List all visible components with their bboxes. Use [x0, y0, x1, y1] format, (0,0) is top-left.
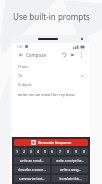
button[interactable]: 4 — [35, 148, 41, 155]
staticText: 4 — [37, 149, 40, 154]
button[interactable]: Subject — [12, 80, 90, 89]
button[interactable]: Send — [69, 51, 76, 58]
button[interactable]: translate this... — [52, 175, 88, 182]
button[interactable]: 0 — [81, 148, 88, 155]
staticText: Generate Response — [38, 140, 72, 145]
button[interactable]: 8 — [65, 148, 72, 155]
button[interactable]: 7 — [57, 148, 64, 155]
button[interactable]: To — [12, 71, 90, 80]
button[interactable]: Back — [17, 51, 24, 58]
staticText: 8 — [67, 149, 70, 154]
staticText: Use built-in prompts — [13, 11, 90, 22]
button[interactable]: 5 — [42, 148, 48, 155]
staticText: Compose — [26, 52, 46, 58]
staticText: write a recipe for... — [56, 159, 84, 163]
staticText: 0 — [83, 149, 86, 154]
button[interactable]: Generate Response — [14, 139, 88, 146]
staticText: 1 — [16, 149, 19, 154]
staticText: From — [18, 64, 28, 69]
staticText: write a song... — [60, 168, 81, 172]
button[interactable]: 9 — [73, 148, 80, 155]
button[interactable]: From — [12, 62, 90, 71]
staticText: 7 — [59, 149, 62, 154]
staticText: To — [18, 73, 23, 78]
staticText: describe a scene... — [18, 168, 46, 172]
staticText: summarize text... — [19, 177, 45, 181]
staticText: 9 — [75, 149, 78, 154]
staticText: 3 — [30, 149, 33, 154]
staticText: Subject — [18, 82, 32, 87]
button[interactable]: More options — [78, 51, 85, 58]
button[interactable]: write a recipe for... — [52, 157, 88, 164]
staticText: 1:41 — [17, 45, 23, 49]
button[interactable]: 1 — [14, 148, 20, 155]
button[interactable]: 6 — [49, 148, 56, 155]
button[interactable]: write an email... — [14, 157, 50, 164]
staticText: translate this... — [59, 177, 82, 181]
button[interactable]: 2 — [21, 148, 27, 155]
button[interactable]: describe a scene... — [14, 166, 50, 173]
staticText: write me an email for my boss — [18, 92, 75, 97]
button[interactable]: 3 — [28, 148, 34, 155]
staticText: 6 — [51, 149, 54, 154]
button[interactable]: summarize text... — [14, 175, 50, 182]
staticText: 5 — [44, 149, 47, 154]
staticText: write an email... — [20, 159, 44, 163]
staticText: 2 — [23, 149, 26, 154]
button[interactable]: write a song... — [52, 166, 88, 173]
button[interactable]: Attach file — [60, 51, 67, 58]
